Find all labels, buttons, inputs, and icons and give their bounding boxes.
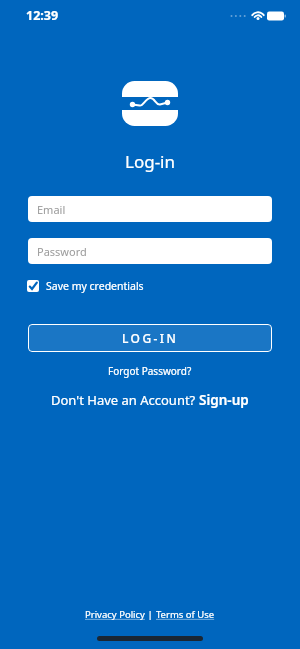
staticText: Forgot Password? (108, 364, 192, 378)
staticText: Log-in (125, 150, 176, 173)
staticText: Privacy Policy (85, 608, 145, 621)
button[interactable]: Forgot Password? (108, 364, 192, 378)
button[interactable]: Terms of Use (156, 608, 215, 621)
button[interactable]: Save my credentials (27, 279, 273, 293)
button[interactable]: Privacy Policy (85, 608, 145, 621)
staticText: Email (37, 202, 66, 217)
staticText: Terms of Use (156, 608, 215, 621)
button[interactable]: Email (28, 196, 272, 222)
button[interactable]: LOG-IN (28, 324, 272, 352)
button[interactable]: Sign-up (199, 391, 249, 409)
staticText: Save my credentials (46, 279, 144, 293)
button[interactable]: Password (28, 238, 272, 264)
staticText: 12:39 (26, 7, 59, 24)
staticText: Sign-up (199, 391, 249, 409)
staticText: Don't Have an Account? (51, 391, 199, 409)
staticText: Password (37, 244, 87, 259)
staticText: | (145, 608, 156, 621)
staticText: LOG-IN (122, 330, 179, 346)
